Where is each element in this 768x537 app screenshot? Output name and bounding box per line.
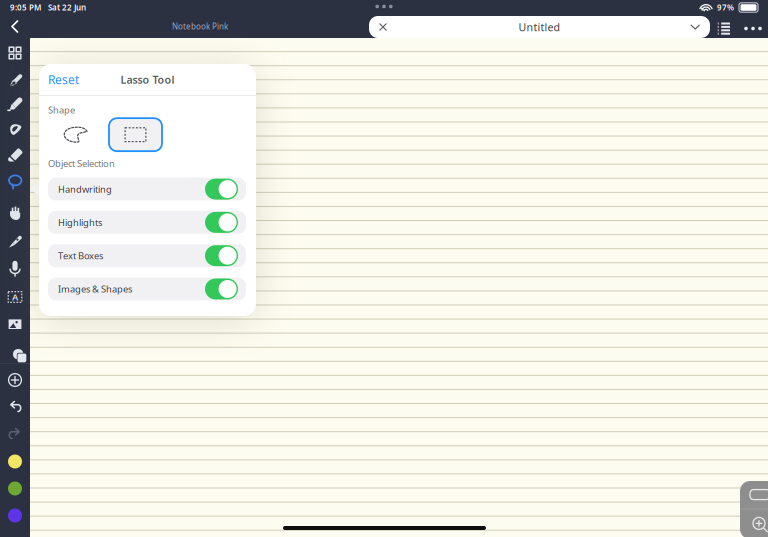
button[interactable]: Green xyxy=(0,475,30,502)
button[interactable]: Pages xyxy=(0,38,30,66)
button[interactable]: Undo xyxy=(0,394,30,421)
button[interactable]: Untitled xyxy=(369,16,710,38)
button[interactable]: Rectangle selection xyxy=(109,118,162,151)
button[interactable]: Highlights xyxy=(48,211,246,234)
button[interactable]: Keyboard xyxy=(740,481,768,509)
staticText: 97% xyxy=(717,2,734,13)
button[interactable]: Handwriting xyxy=(48,178,246,201)
staticText: Highlights xyxy=(58,216,102,229)
button[interactable]: Outline xyxy=(711,17,737,40)
button[interactable]: Freeform lasso xyxy=(64,118,109,151)
button[interactable]: Highlighter xyxy=(0,90,30,115)
button[interactable]: Text box xyxy=(0,283,30,311)
staticText: 9:05 PM xyxy=(10,2,41,13)
button[interactable]: Ruler xyxy=(0,227,30,255)
button[interactable]: Insert image xyxy=(0,311,30,337)
button[interactable]: Text Boxes xyxy=(48,244,246,267)
staticText: Reset xyxy=(48,71,79,87)
staticText: Images & Shapes xyxy=(58,283,132,295)
button[interactable]: Redo xyxy=(0,421,30,448)
button[interactable]: Audio xyxy=(0,255,30,283)
button[interactable]: Eraser xyxy=(0,140,30,165)
staticText: A xyxy=(12,291,18,303)
button[interactable]: Shapes xyxy=(0,337,30,363)
staticText: Sat 22 Jun xyxy=(48,2,86,13)
staticText: Lasso Tool xyxy=(120,72,174,87)
button[interactable]: Add xyxy=(0,366,30,394)
button[interactable]: Pencil xyxy=(0,115,30,140)
button[interactable]: Zoom in xyxy=(740,509,768,537)
button[interactable]: Yellow xyxy=(0,448,30,475)
button[interactable]: Lasso xyxy=(0,165,30,199)
button[interactable]: More options xyxy=(739,17,767,40)
staticText: Text Boxes xyxy=(58,249,103,262)
staticText: Object Selection xyxy=(48,157,115,170)
button[interactable]: Pen xyxy=(0,66,30,90)
button[interactable]: Images & Shapes xyxy=(48,277,246,300)
staticText: Untitled xyxy=(518,20,560,34)
button[interactable]: Reset xyxy=(39,64,79,95)
staticText: Handwriting xyxy=(58,183,112,195)
button[interactable]: Back xyxy=(3,15,27,38)
button[interactable]: Purple xyxy=(0,502,30,529)
button[interactable]: Hand xyxy=(0,199,30,227)
staticText: Notebook Pink xyxy=(172,21,228,32)
staticText: Shape xyxy=(48,104,75,116)
